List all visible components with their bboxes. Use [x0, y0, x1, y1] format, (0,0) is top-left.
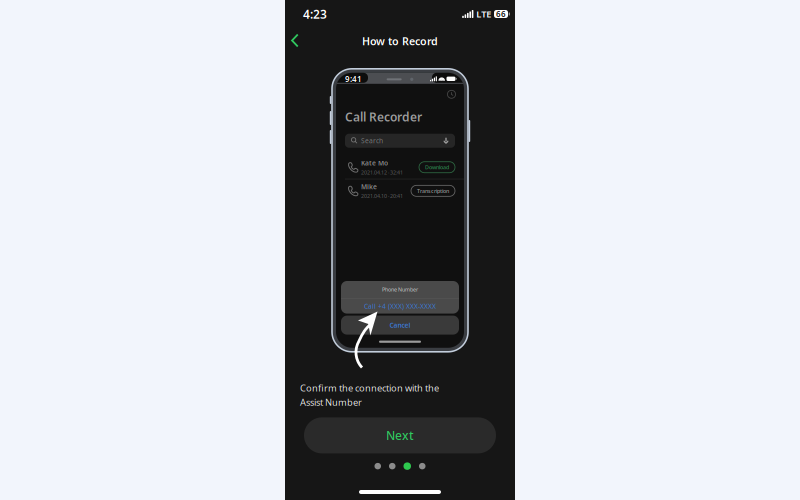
- staticText: How to Record: [362, 34, 438, 48]
- staticText: Download: [425, 164, 449, 171]
- staticText: Call Recorder: [345, 109, 422, 125]
- button[interactable]: Cancel: [341, 316, 459, 335]
- button[interactable]: Recents: [447, 90, 456, 99]
- button[interactable]: Back: [285, 30, 305, 52]
- staticText: 9:41: [345, 73, 362, 84]
- staticText: Phone Number: [382, 286, 418, 293]
- staticText: Confirm the connection with the: [300, 382, 439, 394]
- staticText: LTE: [476, 8, 491, 20]
- staticText: 66: [496, 9, 506, 19]
- staticText: 2021.04.10 · 20:41: [361, 192, 403, 200]
- staticText: Search: [361, 136, 383, 145]
- staticText: Call +4 (XXX) XXX-XXXX: [364, 302, 436, 311]
- staticText: 2021.04.12 · 32:41: [361, 169, 403, 176]
- staticText: Assist Number: [300, 396, 362, 408]
- button[interactable]: Next: [304, 417, 496, 453]
- staticText: Cancel: [389, 321, 410, 330]
- staticText: 4:23: [303, 6, 327, 22]
- staticText: Transcription: [417, 187, 449, 194]
- staticText: Kate Mo: [361, 158, 388, 167]
- staticText: Mike: [361, 182, 377, 191]
- staticText: Next: [386, 427, 414, 443]
